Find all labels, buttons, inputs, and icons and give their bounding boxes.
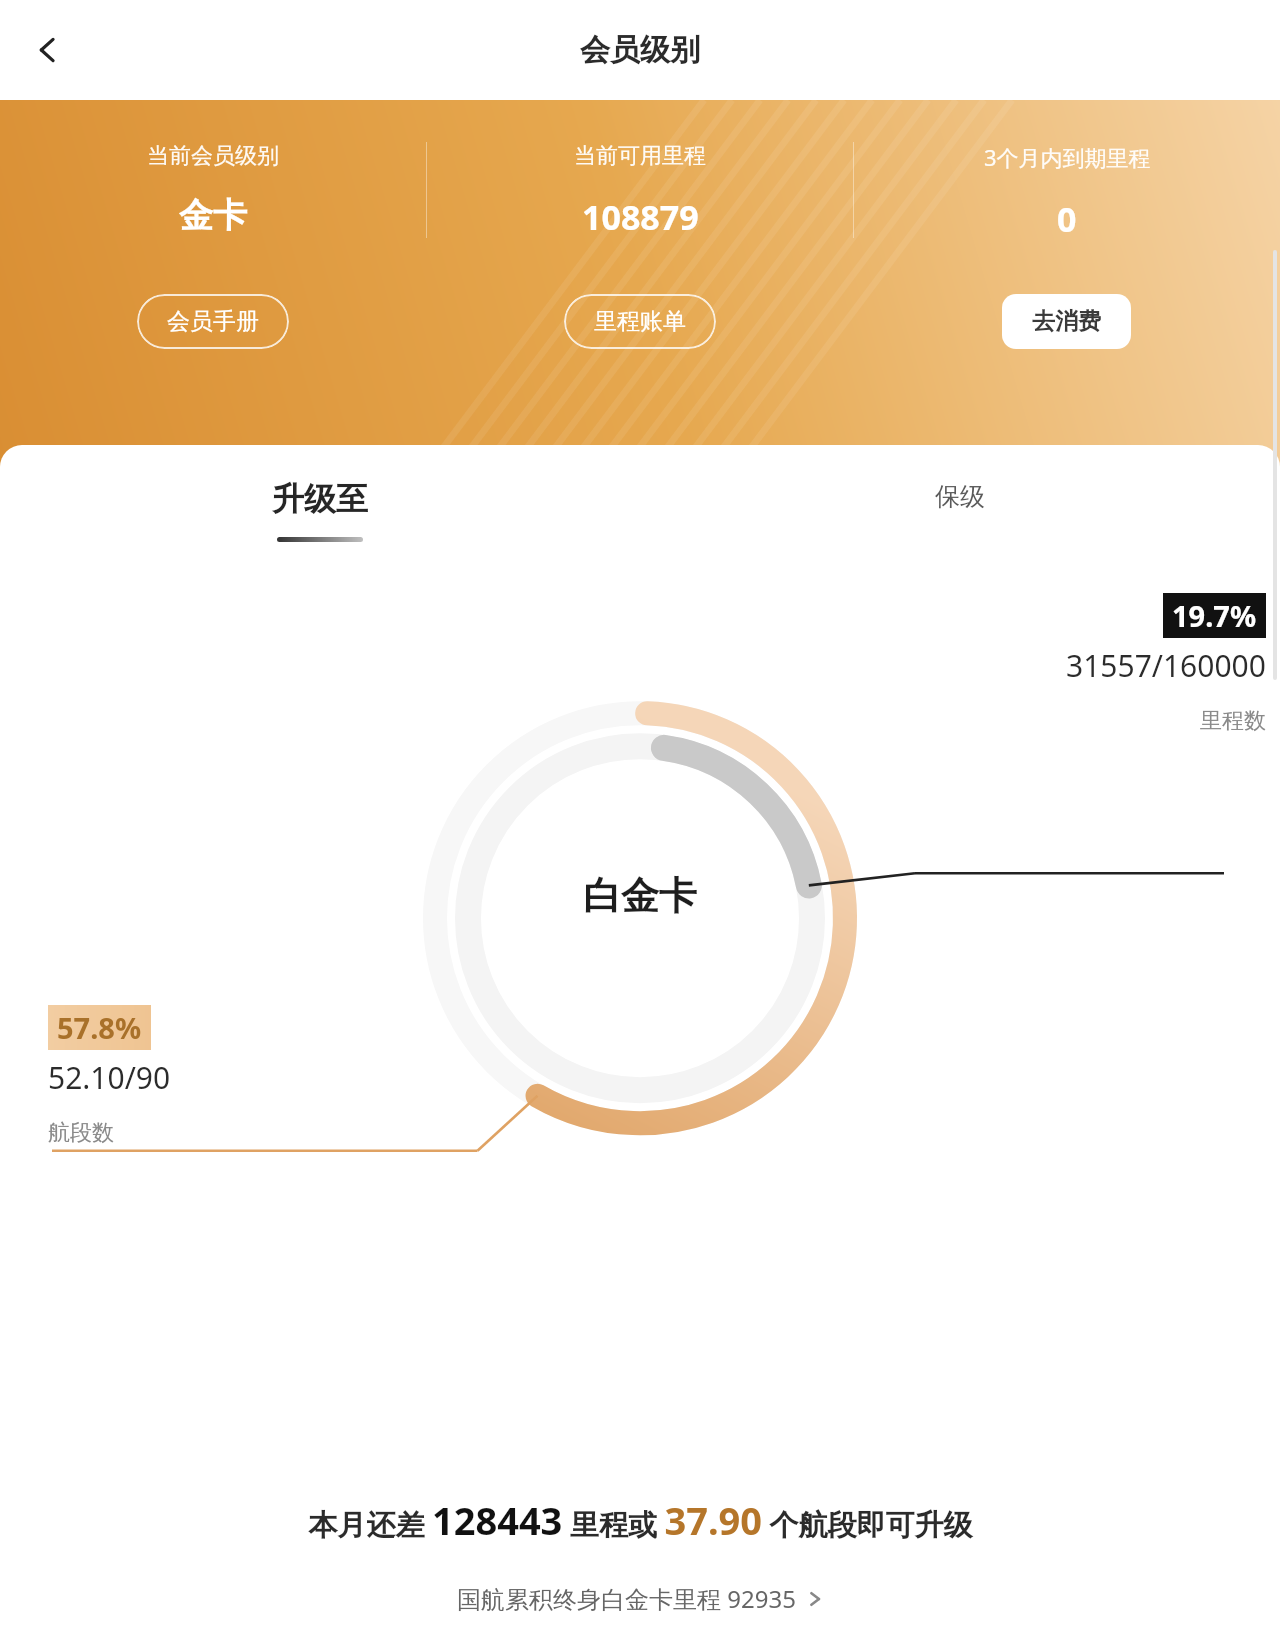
staticText: 会员手册 [167,307,259,336]
button[interactable]: 去消费 [1002,294,1131,349]
staticText: 保级 [935,481,985,512]
staticText: 航段数 [48,1119,114,1147]
staticText: 里程数 [1200,707,1266,735]
button[interactable]: 升级至 [0,445,640,575]
staticText: 升级至 [272,479,368,519]
staticText: 57.8% [57,1008,142,1047]
staticText: 52.10/90 [48,1057,171,1098]
button[interactable]: 会员手册 [137,294,289,349]
staticText: 国航累积终身白金卡里程 92935 [457,1582,796,1615]
staticText: 0 [1057,196,1077,242]
staticText: 里程账单 [594,307,686,336]
staticText: 会员级别 [580,31,700,69]
staticText: 31557/160000 [1066,645,1266,686]
staticText: 当前会员级别 [147,142,279,170]
staticText: 3个月内到期里程 [984,142,1151,172]
button[interactable]: 国航累积终身白金卡里程 92935 [447,1576,834,1621]
staticText: 108879 [582,194,699,240]
staticText: 本月还差 128443 里程或 37.90 个航段即可升级 [308,1494,973,1546]
button[interactable]: 保级 [640,445,1280,575]
staticText: 当前可用里程 [574,142,706,170]
staticText: 去消费 [1032,307,1101,336]
button[interactable]: 里程账单 [564,294,716,349]
button[interactable]: Back [20,22,76,78]
staticText: 金卡 [179,194,247,237]
staticText: 19.7% [1172,596,1257,635]
staticText: 白金卡 [583,872,697,920]
